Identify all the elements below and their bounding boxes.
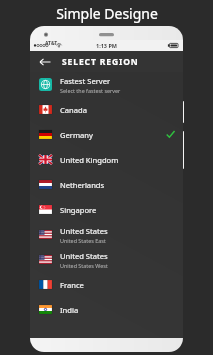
button[interactable]: United States	[30, 222, 183, 247]
button[interactable]: Canada	[30, 97, 183, 122]
staticText: Fastest Server	[60, 76, 111, 86]
staticText: SELECT REGION	[62, 56, 139, 68]
staticText: AT&T	[45, 40, 58, 47]
button[interactable]: Singapore	[30, 197, 183, 222]
staticText: India	[60, 305, 79, 315]
staticText: Select the fastest server	[60, 87, 121, 94]
staticText: France	[60, 280, 84, 290]
staticText: Canada	[60, 105, 87, 115]
button[interactable]: Back	[36, 53, 54, 71]
staticText: Simple Designe	[56, 4, 158, 23]
staticText: United Kingdom	[60, 155, 119, 165]
staticText: United States West	[60, 262, 108, 269]
button[interactable]: India	[30, 297, 183, 322]
staticText: 1:13 PM	[96, 42, 118, 49]
staticText: Singapore	[60, 205, 97, 215]
button[interactable]: Germany	[30, 122, 183, 147]
button[interactable]: United Kingdom	[30, 147, 183, 172]
button[interactable]: United States	[30, 247, 183, 272]
staticText: Netherlands	[60, 180, 105, 190]
button[interactable]: Fastest Server	[30, 72, 183, 97]
staticText: United States East	[60, 237, 106, 244]
staticText: Germany	[60, 130, 93, 140]
button[interactable]: Netherlands	[30, 172, 183, 197]
button[interactable]: France	[30, 272, 183, 297]
staticText: United States	[60, 251, 108, 261]
staticText: United States	[60, 226, 108, 236]
